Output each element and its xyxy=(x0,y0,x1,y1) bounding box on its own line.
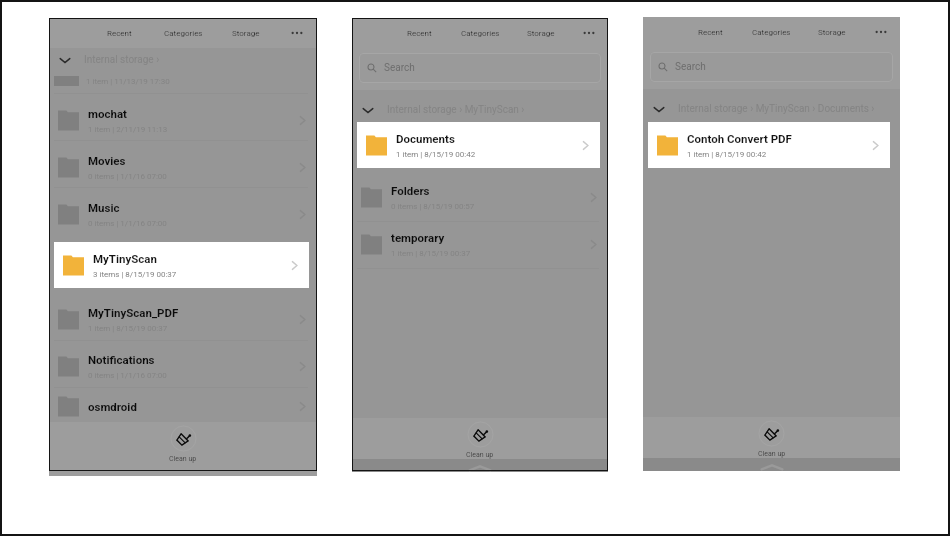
staticText: Internal storage › MyTinyScan › Document… xyxy=(678,103,875,115)
button[interactable]: Recent xyxy=(694,17,727,47)
staticText: 1 item | 8/15/19 00:37 xyxy=(391,249,471,258)
button[interactable]: Notifications xyxy=(49,345,317,387)
staticText: Categories xyxy=(461,29,500,38)
staticText: Documents xyxy=(396,132,455,145)
button[interactable]: Movies xyxy=(49,146,317,188)
staticText: Movies xyxy=(88,154,126,167)
staticText: 1 item | 2/11/19 11:13 xyxy=(88,125,168,134)
button[interactable]: Storage xyxy=(522,18,559,48)
staticText: 0 items | 1/1/16 07:00 xyxy=(88,219,167,228)
staticText: MyTinyScan_PDF xyxy=(88,306,179,319)
button[interactable]: Categories xyxy=(747,17,796,47)
button[interactable]: Clean up xyxy=(170,425,197,452)
staticText: Storage xyxy=(527,29,555,38)
button[interactable]: Internal storage › MyTinyScan › Document… xyxy=(643,99,900,119)
button[interactable]: osmdroid xyxy=(49,392,317,420)
button[interactable]: Recent xyxy=(103,18,136,48)
staticText: 3 items | 8/15/19 00:37 xyxy=(93,270,177,279)
staticText: Clean up xyxy=(466,451,494,459)
button[interactable]: Search xyxy=(359,53,601,83)
staticText: Recent xyxy=(107,29,132,38)
staticText: Search xyxy=(384,62,415,74)
staticText: Categories xyxy=(752,28,791,37)
staticText: 1 item | 8/15/19 00:42 xyxy=(396,150,476,159)
staticText: Contoh Convert PDF xyxy=(687,132,792,145)
staticText: Storage xyxy=(818,28,846,37)
button[interactable]: temporary xyxy=(352,223,608,265)
button[interactable]: More options xyxy=(578,22,600,44)
button[interactable]: More options xyxy=(286,22,308,44)
staticText: Clean up xyxy=(169,455,197,463)
staticText: Folders xyxy=(391,184,430,197)
button[interactable]: Contoh Convert PDF xyxy=(648,122,890,168)
button[interactable]: Clean up xyxy=(758,420,785,447)
button[interactable]: More options xyxy=(870,21,892,43)
button[interactable]: MyTinyScan_PDF xyxy=(49,298,317,340)
button[interactable]: Clean up xyxy=(467,421,494,448)
staticText: Internal storage › MyTinyScan › xyxy=(387,104,525,116)
button[interactable]: mochat xyxy=(49,99,317,141)
staticText: MyTinyScan xyxy=(93,252,157,265)
staticText: Clean up xyxy=(758,450,786,458)
staticText: Recent xyxy=(407,29,432,38)
staticText: 0 items | 8/15/19 00:57 xyxy=(391,202,475,211)
button[interactable]: Documents xyxy=(357,122,600,168)
staticText: 0 items | 1/1/16 07:00 xyxy=(88,172,167,181)
staticText: temporary xyxy=(391,231,445,244)
button[interactable]: Storage xyxy=(813,17,850,47)
staticText: Internal storage › xyxy=(84,54,160,66)
staticText: Music xyxy=(88,201,120,214)
staticText: 0 items | 1/1/16 07:00 xyxy=(88,371,167,380)
staticText: osmdroid xyxy=(88,400,137,413)
button[interactable]: Internal storage › MyTinyScan › xyxy=(352,100,608,120)
staticText: Storage xyxy=(232,29,260,38)
staticText: 1 item | 8/15/19 00:37 xyxy=(88,324,168,333)
button[interactable]: MyTinyScan xyxy=(54,242,309,288)
button[interactable]: Storage xyxy=(227,18,264,48)
button[interactable]: Music xyxy=(49,193,317,235)
staticText: mochat xyxy=(88,107,127,120)
staticText: Categories xyxy=(164,29,203,38)
staticText: Notifications xyxy=(88,353,155,366)
button[interactable]: Recent xyxy=(403,18,436,48)
staticText: 1 item | 11/13/19 17:30 xyxy=(86,77,170,86)
button[interactable]: Categories xyxy=(456,18,505,48)
button[interactable]: Internal storage › xyxy=(49,50,317,70)
button[interactable]: Search xyxy=(650,52,893,82)
staticText: Search xyxy=(675,61,706,73)
button[interactable]: Folders xyxy=(352,176,608,218)
button[interactable]: Categories xyxy=(159,18,208,48)
staticText: 1 item | 8/15/19 00:42 xyxy=(687,150,767,159)
staticText: Recent xyxy=(698,28,723,37)
